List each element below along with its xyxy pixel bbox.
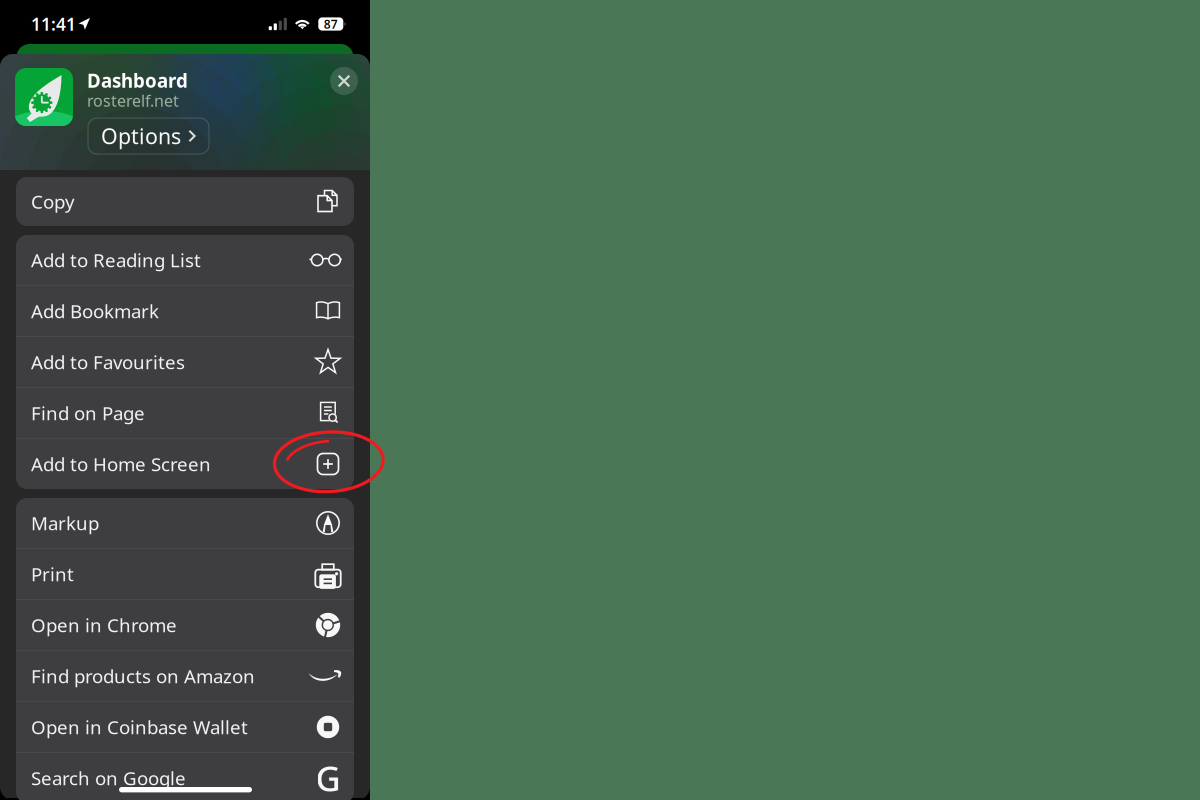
staticText: Find products on Amazon: [31, 664, 255, 688]
staticText: Add Bookmark: [31, 299, 159, 323]
staticText: Add to Reading List: [31, 248, 201, 272]
staticText: Open in Chrome: [31, 613, 177, 637]
button[interactable]: Copy: [16, 177, 354, 226]
staticText: Add to Home Screen: [31, 452, 211, 476]
button[interactable]: Add to Favourites: [16, 337, 354, 387]
button[interactable]: Add to Home Screen: [16, 439, 354, 489]
button[interactable]: Add Bookmark: [16, 286, 354, 336]
staticText: 11:41: [31, 12, 76, 35]
staticText: G: [315, 755, 340, 800]
button[interactable]: Print: [16, 549, 354, 599]
button[interactable]: Find products on Amazon: [16, 651, 354, 701]
staticText: Markup: [31, 511, 99, 535]
staticText: Search on Google: [31, 766, 186, 790]
button[interactable]: Find on Page: [16, 388, 354, 438]
staticText: 87: [324, 16, 338, 32]
button[interactable]: Search on Google: [16, 753, 354, 800]
staticText: Options: [101, 122, 181, 150]
button[interactable]: Open in Coinbase Wallet: [16, 702, 354, 752]
staticText: Copy: [31, 189, 75, 214]
button[interactable]: Open in Chrome: [16, 600, 354, 650]
button[interactable]: Markup: [16, 498, 354, 548]
staticText: Dashboard: [87, 68, 188, 93]
staticText: rosterelf.net: [87, 90, 179, 111]
button[interactable]: Options: [88, 118, 209, 154]
button[interactable]: Close: [330, 67, 358, 95]
button[interactable]: Add to Reading List: [16, 235, 354, 285]
staticText: Print: [31, 562, 74, 586]
staticText: Open in Coinbase Wallet: [31, 715, 248, 739]
staticText: Find on Page: [31, 401, 145, 425]
staticText: Add to Favourites: [31, 350, 185, 374]
